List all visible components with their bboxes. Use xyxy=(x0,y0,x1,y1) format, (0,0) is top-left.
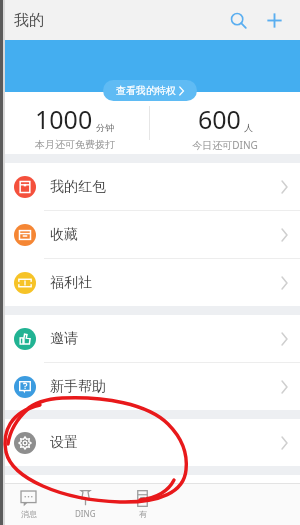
staticText: 人 xyxy=(244,122,253,133)
button[interactable]: 消息 xyxy=(0,483,57,525)
staticText: 600 xyxy=(198,102,241,136)
button[interactable]: 邀请 xyxy=(0,315,300,362)
button[interactable]: 我的红包 xyxy=(0,163,300,210)
staticText: 我的红包 xyxy=(50,178,106,196)
button[interactable]: 收藏 xyxy=(0,211,300,258)
staticText: 消息 xyxy=(21,509,37,519)
staticText: 1000 xyxy=(35,102,93,136)
staticText: 福利社 xyxy=(50,274,92,292)
staticText: 本月还可免费拨打 xyxy=(35,138,115,151)
staticText: 邀请 xyxy=(50,330,78,348)
staticText: 分钟 xyxy=(96,122,114,133)
button[interactable]: 福利社 xyxy=(0,259,300,306)
button[interactable]: 有 xyxy=(114,483,171,525)
staticText: 今日还可DING xyxy=(192,138,258,152)
button[interactable]: 设置 xyxy=(0,419,300,466)
staticText: 收藏 xyxy=(50,226,78,244)
staticText: DING xyxy=(75,508,96,519)
staticText: 我的 xyxy=(14,11,44,30)
staticText: 有 xyxy=(139,509,147,519)
button[interactable]: 新手帮助 xyxy=(0,363,300,410)
button[interactable]: Add xyxy=(256,2,292,38)
button[interactable]: 查看我的特权 xyxy=(103,80,197,101)
staticText: 新手帮助 xyxy=(50,378,106,396)
staticText: 设置 xyxy=(50,434,78,452)
staticText: 查看我的特权 xyxy=(116,84,176,97)
button[interactable]: DING xyxy=(57,483,114,525)
button[interactable]: Search xyxy=(220,2,256,38)
